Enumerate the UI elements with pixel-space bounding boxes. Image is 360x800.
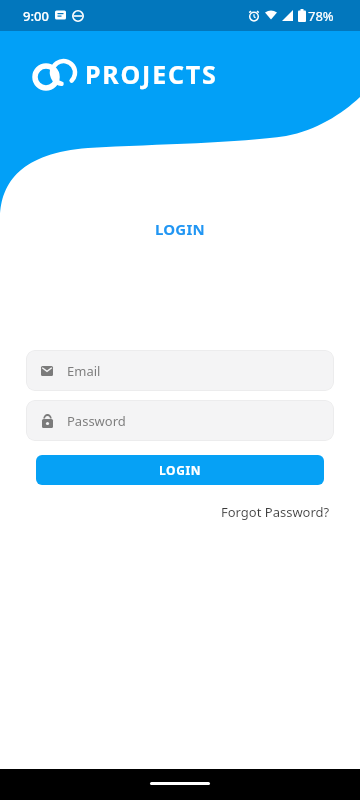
staticText: 9:00	[23, 7, 49, 25]
button[interactable]: Password	[26, 400, 334, 441]
staticText: 78%	[308, 7, 334, 25]
staticText: LOGIN	[155, 219, 205, 239]
button[interactable]: Forgot Password?	[221, 503, 330, 521]
staticText: Forgot Password?	[221, 503, 330, 521]
staticText: Email	[67, 362, 101, 380]
staticText: Password	[67, 412, 126, 430]
staticText: LOGIN	[159, 462, 202, 478]
staticText: PROJECTS	[85, 57, 218, 91]
button[interactable]: LOGIN	[36, 455, 324, 485]
button[interactable]: Email	[26, 350, 334, 391]
